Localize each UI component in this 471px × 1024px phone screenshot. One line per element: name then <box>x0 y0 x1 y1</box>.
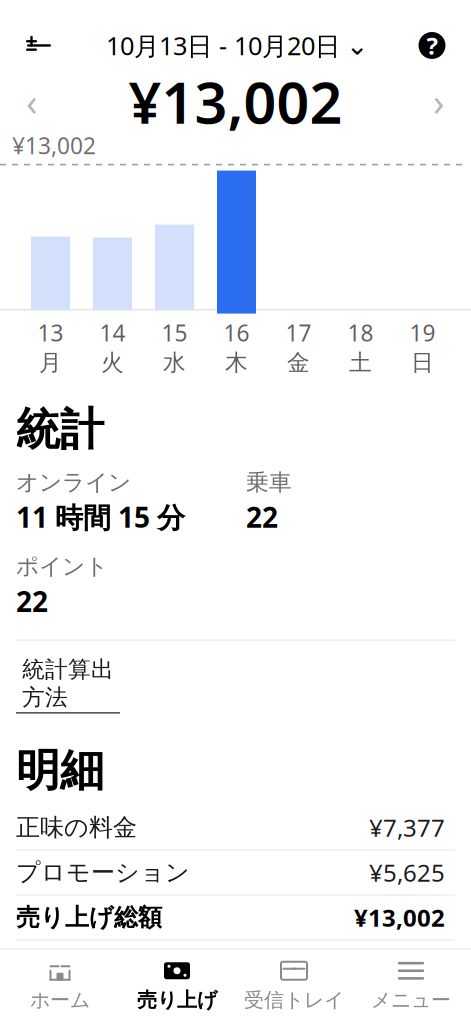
staticText: 明細 <box>16 743 104 797</box>
staticText: 乗車 <box>246 469 292 496</box>
staticText: ‹ <box>26 77 38 126</box>
button[interactable]: 戻る <box>16 22 62 68</box>
staticText: ¥13,002 <box>128 63 342 139</box>
button[interactable]: 統計算出方法 <box>16 641 471 723</box>
button[interactable]: 売り上げ <box>118 957 235 1013</box>
button[interactable]: 前の週 <box>10 79 54 123</box>
staticText: ¥7,377 <box>369 812 445 843</box>
staticText: 11 時間 15 分 <box>16 498 185 536</box>
staticText: 18 <box>347 318 373 348</box>
staticText: ¥13,002 <box>354 902 445 933</box>
staticText: メニュー <box>371 988 451 1012</box>
button[interactable]: 次の週 <box>417 79 461 123</box>
staticText: 16 <box>223 318 249 348</box>
button[interactable]: メニュー <box>352 957 469 1013</box>
staticText: ¥13,002 <box>12 130 96 161</box>
staticText: ? <box>426 29 437 61</box>
staticText: 22 <box>16 582 48 620</box>
staticText: 日 <box>411 349 434 376</box>
staticText: ⌄ <box>346 30 368 61</box>
staticText: 19 <box>409 318 435 348</box>
button[interactable]: 10月13日 - 10月20日 <box>106 22 365 68</box>
staticText: 14 <box>99 318 125 348</box>
button[interactable]: ヘルプ <box>409 22 455 68</box>
button[interactable]: プロモーション <box>16 850 471 894</box>
button[interactable]: ホーム <box>1 957 118 1013</box>
staticText: 統計算出方法 <box>22 656 114 711</box>
staticText: プロモーション <box>16 858 190 887</box>
staticText: ホーム <box>30 988 90 1012</box>
staticText: 火 <box>101 349 124 376</box>
staticText: 売り上げ <box>137 988 217 1012</box>
staticText: 正味の料金 <box>16 813 137 842</box>
staticText: 15 <box>161 318 187 348</box>
button[interactable]: 正味の料金 <box>16 805 471 849</box>
staticText: 売り上げ総額 <box>16 903 162 932</box>
staticText: ポイント <box>16 553 108 580</box>
button[interactable]: 受信トレイ <box>235 957 352 1013</box>
staticText: 土 <box>349 349 372 376</box>
staticText: 17 <box>285 318 311 348</box>
button[interactable]: 売り上げ総額 <box>16 895 471 939</box>
staticText: 月 <box>39 349 62 376</box>
staticText: 13 <box>37 318 63 348</box>
staticText: ¥5,625 <box>369 857 445 888</box>
staticText: 水 <box>163 349 186 376</box>
staticText: › <box>433 77 445 126</box>
staticText: 10月13日 - 10月20日 <box>106 29 340 62</box>
staticText: 金 <box>287 349 310 376</box>
staticText: オンライン <box>16 469 131 496</box>
staticText: 22 <box>246 498 278 536</box>
staticText: 統計 <box>16 402 104 456</box>
staticText: 受信トレイ <box>244 988 344 1012</box>
staticText: 木 <box>225 349 248 376</box>
